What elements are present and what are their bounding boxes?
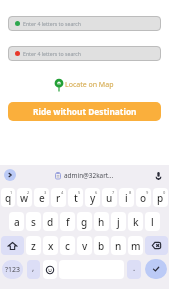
button[interactable]: o: [136, 188, 151, 207]
button[interactable]: u: [102, 188, 117, 207]
button[interactable]: f: [60, 212, 75, 231]
staticText: w: [20, 191, 29, 205]
staticText: f: [66, 215, 70, 229]
button[interactable]: e: [34, 188, 49, 207]
button[interactable]: admin@32kart...: [55, 171, 114, 180]
button[interactable]: Show more suggestions: [4, 169, 16, 181]
staticText: c: [65, 239, 70, 253]
staticText: ?123: [5, 265, 21, 275]
staticText: s: [31, 215, 36, 229]
button[interactable]: Backspace: [145, 236, 168, 255]
button[interactable]: Emoji: [43, 260, 57, 279]
staticText: 1: [10, 190, 13, 195]
button[interactable]: d: [43, 212, 58, 231]
button[interactable]: v: [77, 236, 92, 255]
staticText: d: [47, 215, 54, 229]
staticText: p: [157, 191, 164, 205]
staticText: n: [115, 239, 122, 253]
staticText: r: [56, 191, 61, 205]
button[interactable]: .: [127, 260, 141, 279]
staticText: j: [117, 215, 120, 229]
button[interactable]: i: [119, 188, 134, 207]
staticText: b: [98, 239, 105, 253]
staticText: z: [31, 239, 36, 253]
button[interactable]: c: [60, 236, 75, 255]
staticText: 9: [146, 190, 149, 195]
staticText: l: [151, 215, 154, 229]
staticText: a: [14, 215, 20, 229]
button[interactable]: g: [77, 212, 92, 231]
staticText: g: [81, 215, 88, 229]
staticText: x: [48, 239, 54, 253]
button[interactable]: y: [85, 188, 100, 207]
button[interactable]: p: [153, 188, 168, 207]
button[interactable]: m: [128, 236, 143, 255]
button[interactable]: q: [1, 188, 15, 207]
button[interactable]: w: [17, 188, 32, 207]
staticText: Enter 4 letters to search: [23, 50, 82, 57]
button[interactable]: t: [68, 188, 83, 207]
staticText: 7: [112, 190, 115, 195]
staticText: e: [39, 191, 45, 205]
button[interactable]: b: [94, 236, 109, 255]
button[interactable]: h: [94, 212, 109, 231]
staticText: q: [5, 191, 12, 205]
staticText: m: [131, 239, 141, 253]
staticText: h: [98, 215, 105, 229]
button[interactable]: Shift: [1, 236, 24, 255]
button[interactable]: j: [111, 212, 126, 231]
staticText: o: [140, 191, 147, 205]
button[interactable]: k: [128, 212, 143, 231]
staticText: 0: [163, 190, 166, 195]
button[interactable]: Locate on Map: [0, 78, 169, 92]
staticText: 2: [27, 190, 30, 195]
staticText: y: [90, 191, 96, 205]
button[interactable]: x: [43, 236, 58, 255]
staticText: k: [133, 215, 139, 229]
staticText: 4: [61, 190, 64, 195]
button[interactable]: Ride without Destination: [8, 102, 161, 121]
staticText: i: [125, 191, 128, 205]
button[interactable]: n: [111, 236, 126, 255]
staticText: Ride without Destination: [33, 106, 137, 117]
button[interactable]: Enter: [145, 259, 167, 279]
staticText: admin@32kart...: [64, 171, 114, 180]
button[interactable]: ?123: [2, 260, 23, 279]
button[interactable]: r: [51, 188, 66, 207]
staticText: Locate on Map: [65, 80, 114, 90]
staticText: 5: [78, 190, 81, 195]
button[interactable]: ,: [27, 260, 40, 279]
button[interactable]: Voice input: [153, 170, 164, 181]
staticText: u: [106, 191, 113, 205]
staticText: v: [82, 239, 88, 253]
button[interactable]: l: [145, 212, 160, 231]
button[interactable]: a: [9, 212, 24, 231]
staticText: Enter 4 letters to search: [23, 20, 82, 27]
staticText: 3: [44, 190, 47, 195]
staticText: ,: [32, 262, 35, 273]
button[interactable]: Enter 4 letters to search: [8, 46, 161, 61]
staticText: 6: [95, 190, 98, 195]
button[interactable]: s: [26, 212, 41, 231]
staticText: .: [133, 262, 136, 273]
staticText: t: [74, 191, 78, 205]
button[interactable]: z: [26, 236, 41, 255]
button[interactable]: Enter 4 letters to search: [8, 16, 161, 31]
staticText: 8: [129, 190, 132, 195]
